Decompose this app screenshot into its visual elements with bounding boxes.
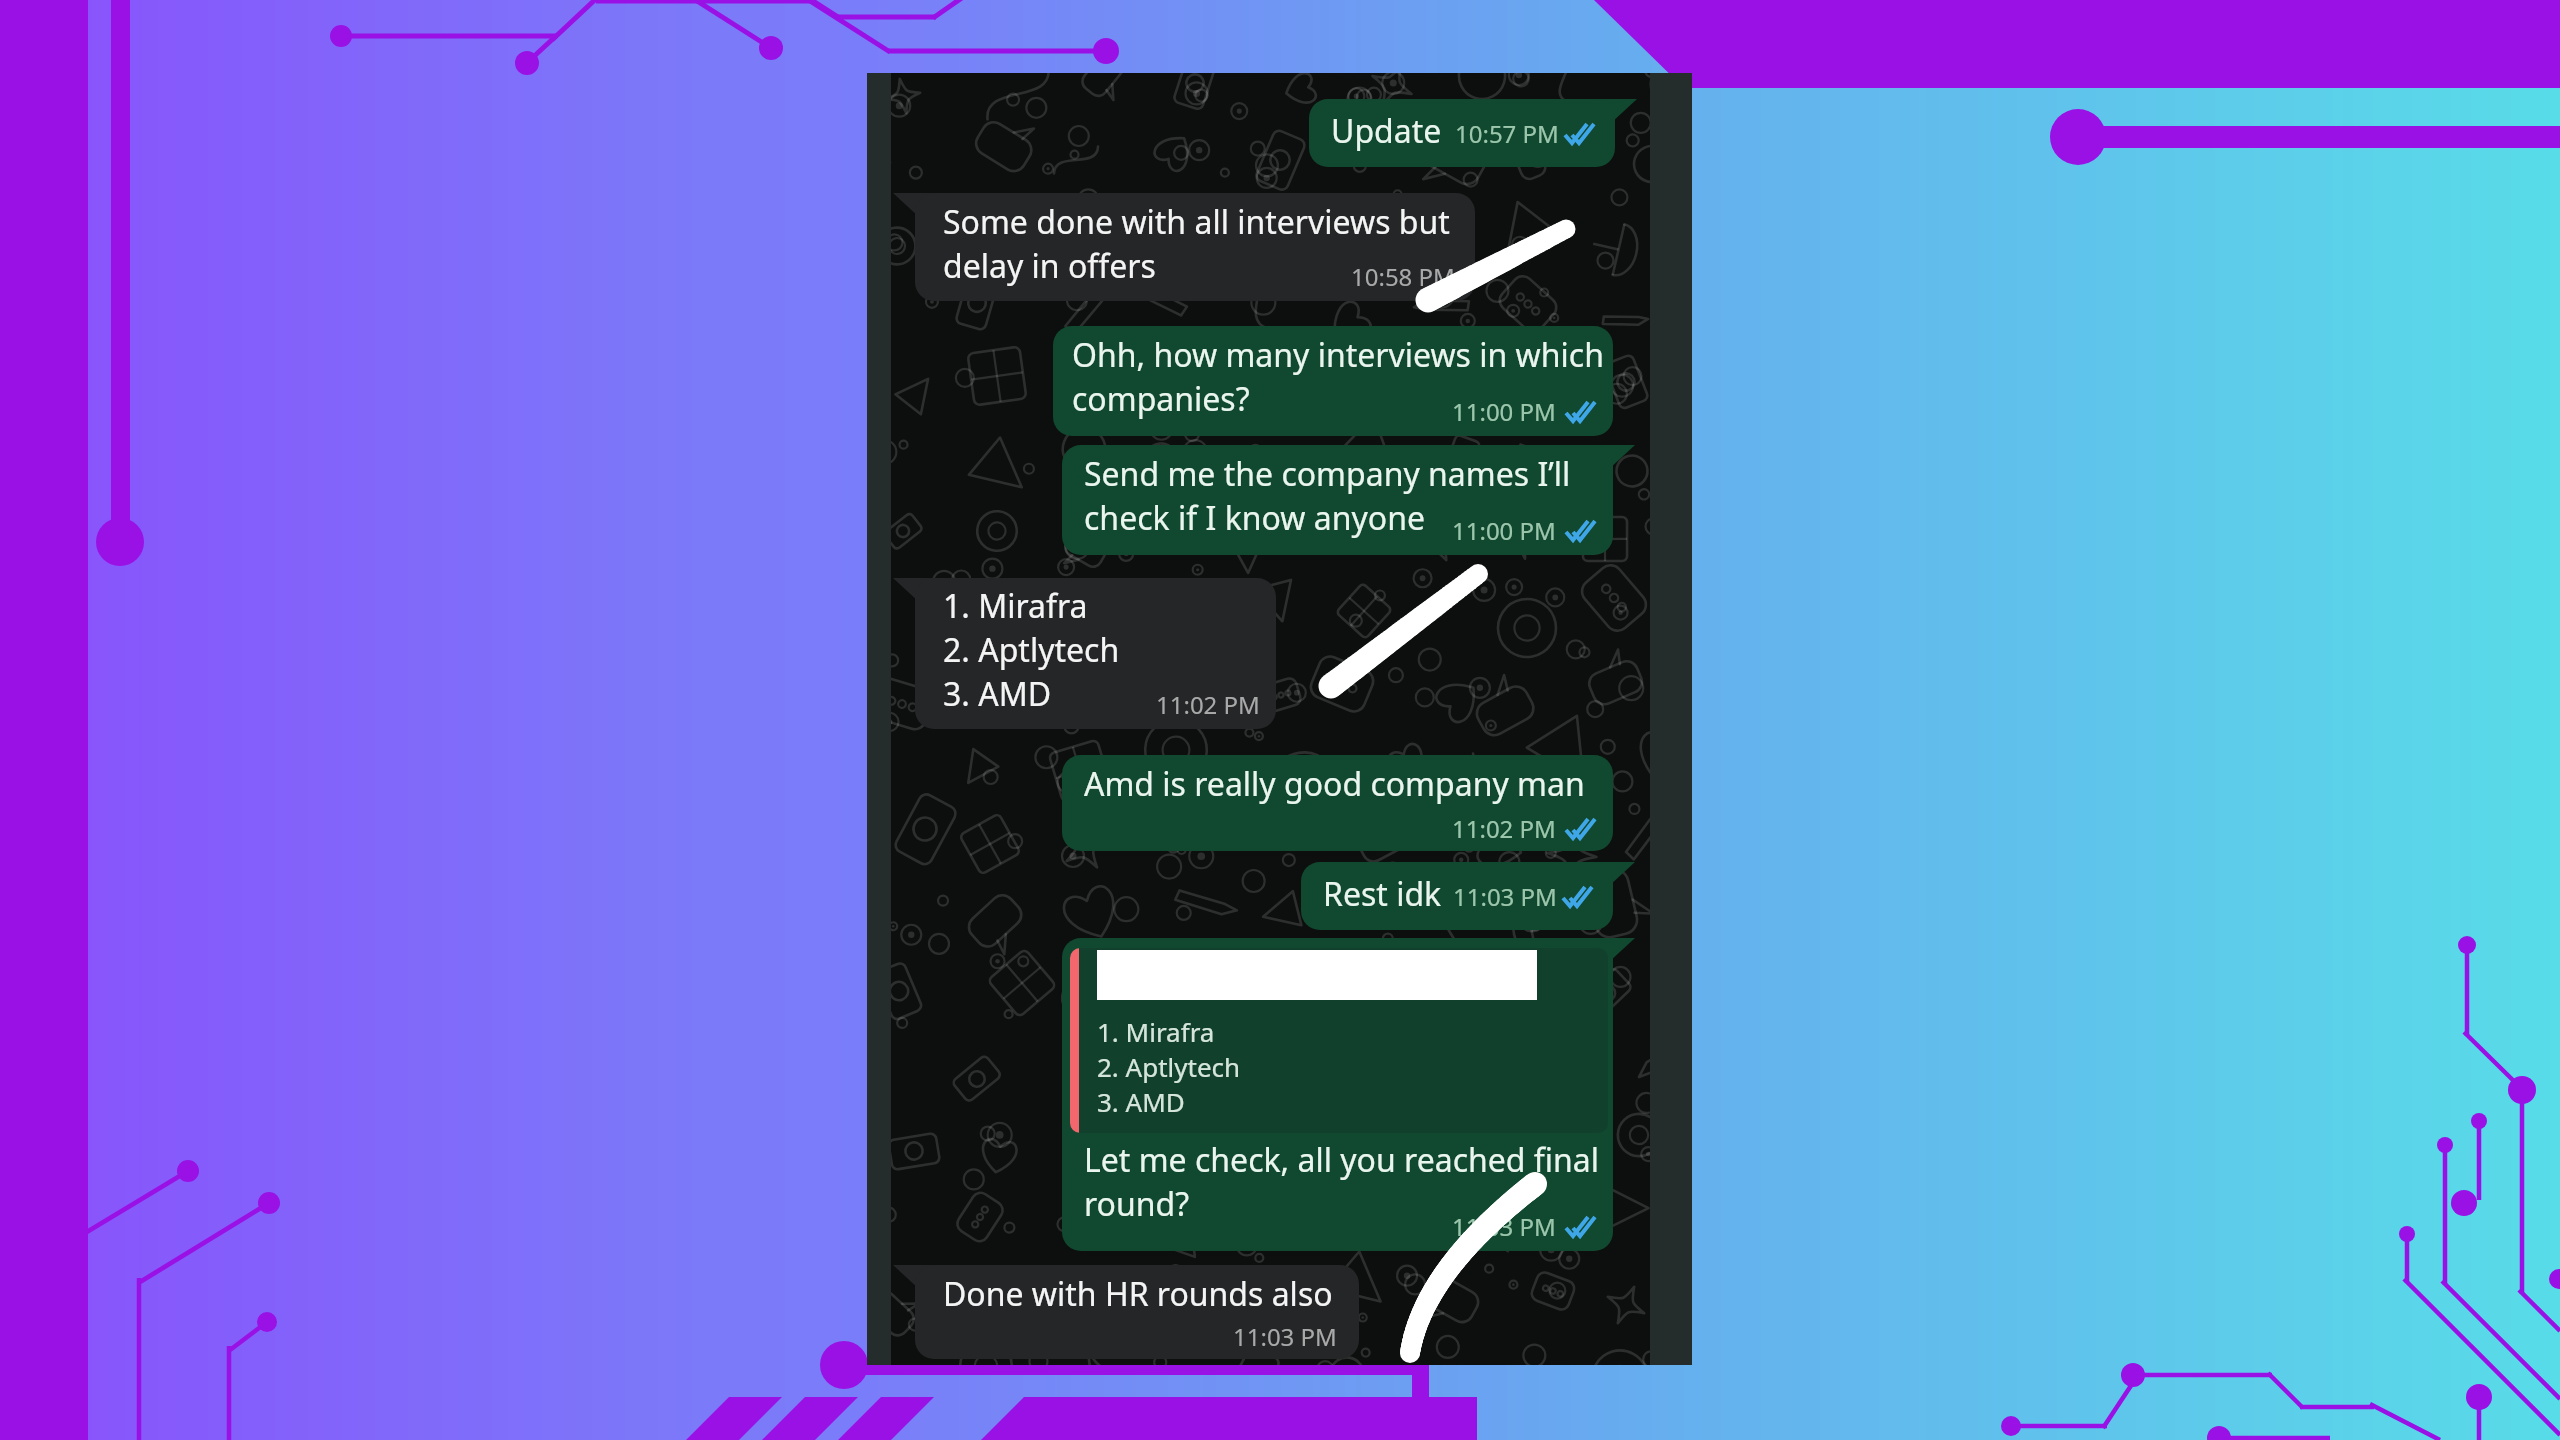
staticText: 3. AMD <box>1097 1084 1185 1119</box>
staticText: Ohh, how many interviews in which <box>1072 333 1604 377</box>
staticText: 11:02 PM <box>1156 688 1260 721</box>
staticText: 11:03 PM <box>1452 1210 1556 1243</box>
button[interactable]: Some done with all interviews but <box>915 193 1475 301</box>
staticText: 1. Mirafra <box>1097 1014 1215 1049</box>
staticText: 1. Mirafra <box>943 584 1088 628</box>
button[interactable]: Rest idk <box>1301 862 1613 930</box>
button[interactable]: Amd is really good company man <box>1062 755 1613 851</box>
staticText: companies? <box>1072 377 1250 421</box>
staticText: round? <box>1084 1182 1190 1226</box>
staticText: Done with HR rounds also <box>943 1272 1333 1316</box>
button[interactable]: 1. Mirafra <box>1062 938 1613 1251</box>
button[interactable]: 1. Mirafra <box>915 578 1276 729</box>
button[interactable]: Send me the company names I’ll <box>1062 445 1613 555</box>
button[interactable]: Ohh, how many interviews in which <box>1053 326 1613 436</box>
staticText: 10:57 PM <box>1455 117 1559 150</box>
staticText: 11:00 PM <box>1452 514 1556 547</box>
staticText: 11:03 PM <box>1453 880 1557 913</box>
staticText: 11:03 PM <box>1233 1320 1337 1353</box>
button[interactable]: Update <box>1309 99 1615 167</box>
staticText: check if I know anyone <box>1084 496 1425 540</box>
staticText: 2. Aptlytech <box>943 628 1120 672</box>
button[interactable]: Done with HR rounds also <box>915 1265 1359 1359</box>
staticText: 3. AMD <box>943 672 1052 716</box>
staticText: 10:58 PM <box>1351 260 1455 293</box>
staticText: Some done with all interviews but <box>943 200 1450 244</box>
staticText: Send me the company names I’ll <box>1084 452 1571 496</box>
staticText: Let me check, all you reached final <box>1084 1138 1600 1182</box>
staticText: Rest idk <box>1323 872 1442 916</box>
staticText: 11:00 PM <box>1452 395 1556 428</box>
staticText: Amd is really good company man <box>1084 762 1585 806</box>
staticText: Update <box>1331 109 1442 153</box>
staticText: 2. Aptlytech <box>1097 1049 1241 1084</box>
staticText: 11:02 PM <box>1452 812 1556 845</box>
staticText: delay in offers <box>943 244 1156 288</box>
